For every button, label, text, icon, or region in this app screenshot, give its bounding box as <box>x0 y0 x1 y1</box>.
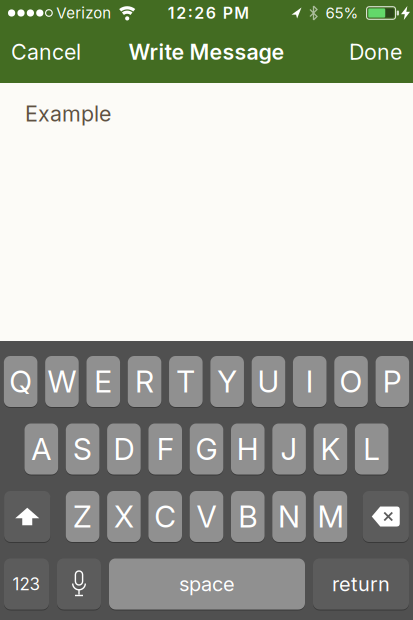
button[interactable]: J <box>272 423 306 474</box>
staticText: Q <box>9 364 32 399</box>
button[interactable]: Shift <box>4 491 50 542</box>
staticText: Done <box>349 39 402 65</box>
staticText: Write Message <box>128 39 284 65</box>
button[interactable]: E <box>86 356 120 407</box>
staticText: F <box>157 431 174 467</box>
button[interactable]: R <box>128 356 161 407</box>
staticText: 123 <box>12 574 40 594</box>
button[interactable]: 123 <box>4 558 49 609</box>
button[interactable]: space <box>109 558 305 609</box>
staticText: L <box>363 431 380 467</box>
button[interactable]: H <box>231 423 265 474</box>
button[interactable]: W <box>45 356 79 407</box>
staticText: A <box>31 431 51 467</box>
button[interactable]: K <box>314 423 347 474</box>
button[interactable]: Z <box>66 491 99 542</box>
button[interactable]: X <box>107 491 141 542</box>
button[interactable]: F <box>148 423 182 474</box>
staticText: U <box>257 364 279 399</box>
staticText: K <box>320 431 340 467</box>
staticText: O <box>340 364 363 399</box>
button[interactable]: return <box>313 558 409 609</box>
staticText: N <box>278 499 300 534</box>
staticText: 65% <box>325 4 358 22</box>
button[interactable]: O <box>334 356 368 407</box>
button[interactable]: T <box>169 356 203 407</box>
staticText: Cancel <box>11 39 81 65</box>
staticText: P <box>383 364 402 399</box>
staticText: Y <box>217 364 237 399</box>
staticText: M <box>317 499 343 534</box>
staticText: X <box>114 499 134 534</box>
button[interactable]: Done <box>349 39 402 65</box>
button[interactable]: I <box>293 356 326 407</box>
button[interactable]: Q <box>4 356 37 407</box>
button[interactable]: M <box>314 491 347 542</box>
staticText: E <box>94 364 112 399</box>
staticText: G <box>195 431 217 467</box>
button[interactable]: P <box>376 356 409 407</box>
button[interactable]: N <box>272 491 306 542</box>
staticText: 12:26 PM <box>168 4 249 22</box>
staticText: Example <box>25 101 111 126</box>
button[interactable]: U <box>252 356 285 407</box>
staticText: T <box>176 364 195 399</box>
staticText: Verizon <box>56 4 111 22</box>
staticText: V <box>196 499 216 534</box>
staticText: space <box>179 572 235 596</box>
staticText: S <box>73 431 92 467</box>
button[interactable]: Dictate <box>57 558 101 609</box>
button[interactable]: V <box>190 491 223 542</box>
button[interactable]: D <box>107 423 141 474</box>
staticText: I <box>306 364 314 399</box>
staticText: B <box>238 499 257 534</box>
button[interactable]: C <box>148 491 182 542</box>
staticText: return <box>332 572 390 596</box>
staticText: H <box>237 431 259 467</box>
button[interactable]: B <box>231 491 265 542</box>
button[interactable]: Cancel <box>11 39 81 65</box>
staticText: R <box>135 364 154 399</box>
staticText: W <box>47 364 76 399</box>
staticText: J <box>281 431 298 467</box>
button[interactable]: Y <box>210 356 244 407</box>
staticText: Z <box>73 499 92 534</box>
button[interactable]: A <box>24 423 58 474</box>
button[interactable]: L <box>355 423 388 474</box>
button[interactable]: Delete <box>363 491 409 542</box>
button[interactable]: S <box>66 423 99 474</box>
staticText: D <box>113 431 134 467</box>
staticText: C <box>154 499 176 534</box>
button[interactable]: G <box>190 423 223 474</box>
